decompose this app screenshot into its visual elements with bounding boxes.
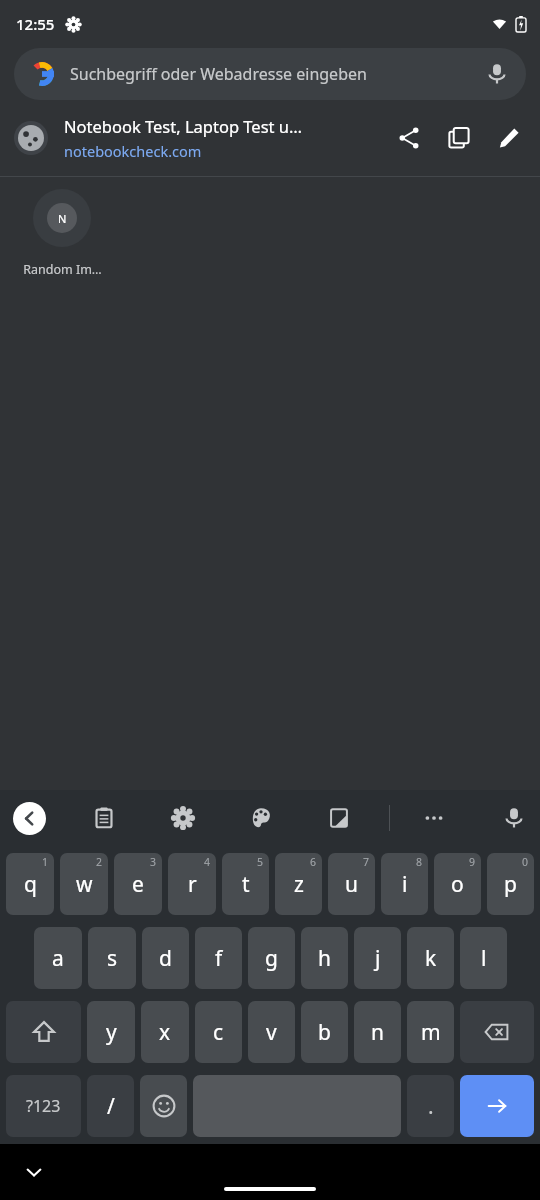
staticText: d (159, 944, 172, 973)
button[interactable]: s (88, 927, 136, 989)
staticText: 9 (469, 855, 476, 869)
button[interactable]: Copy (442, 121, 476, 155)
staticText: f (215, 944, 223, 973)
staticText: 12:55 (16, 14, 55, 34)
button[interactable]: Hide keyboard (20, 1158, 48, 1186)
button[interactable]: More options (413, 797, 455, 839)
staticText: 3 (150, 855, 157, 869)
button[interactable]: m (407, 1001, 454, 1063)
staticText: notebookcheck.com (64, 141, 202, 161)
button[interactable]: b (301, 1001, 348, 1063)
button[interactable]: e (114, 853, 162, 915)
staticText: o (451, 870, 464, 899)
button[interactable]: g (248, 927, 295, 989)
staticText: y (106, 1018, 117, 1047)
staticText: 6 (310, 855, 317, 869)
staticText: i (402, 870, 408, 899)
button[interactable]: a (34, 927, 82, 989)
button[interactable]: x (141, 1001, 189, 1063)
staticText: 5 (257, 855, 264, 869)
button[interactable]: f (195, 927, 242, 989)
button[interactable]: r (168, 853, 216, 915)
staticText: z (294, 870, 304, 899)
button[interactable]: q (6, 853, 54, 915)
button[interactable]: / (87, 1075, 134, 1137)
staticText: s (107, 944, 118, 973)
staticText: h (318, 944, 331, 973)
button[interactable]: Theme (240, 797, 282, 839)
button[interactable]: v (248, 1001, 295, 1063)
button[interactable]: Resize (318, 797, 360, 839)
button[interactable]: u (328, 853, 375, 915)
button[interactable]: . (407, 1075, 454, 1137)
staticText: g (265, 944, 278, 973)
staticText: l (481, 944, 487, 973)
button[interactable]: z (275, 853, 322, 915)
button[interactable]: Edit (492, 121, 526, 155)
staticText: / (107, 1092, 115, 1121)
staticText: 4 (204, 855, 211, 869)
staticText: r (188, 870, 197, 899)
staticText: 1 (42, 855, 49, 869)
button[interactable]: j (354, 927, 401, 989)
button[interactable]: l (460, 927, 507, 989)
staticText: w (76, 870, 93, 899)
staticText: Random Im… (23, 261, 102, 278)
staticText: a (52, 944, 64, 973)
button[interactable]: Settings (162, 797, 204, 839)
button[interactable]: Voice input (493, 797, 535, 839)
button[interactable]: Shift (6, 1001, 81, 1063)
button[interactable]: Clipboard (83, 797, 125, 839)
button[interactable]: Notebook Test, Laptop Test u… (0, 100, 540, 176)
staticText: v (266, 1018, 277, 1047)
button[interactable]: Share (392, 121, 426, 155)
staticText: t (242, 870, 250, 899)
button[interactable]: ?123 (6, 1075, 81, 1137)
button[interactable]: t (222, 853, 269, 915)
staticText: 7 (363, 855, 370, 869)
staticText: u (345, 870, 358, 899)
staticText: e (132, 870, 144, 899)
button[interactable]: Back (13, 802, 46, 835)
button[interactable]: Emoji (140, 1075, 187, 1137)
staticText: q (24, 870, 37, 899)
staticText: . (428, 1092, 434, 1121)
staticText: Suchbegriff oder Webadresse eingeben (70, 63, 367, 85)
button[interactable]: d (142, 927, 189, 989)
button[interactable]: n (354, 1001, 401, 1063)
staticText: c (213, 1018, 224, 1047)
button[interactable]: N (16, 189, 108, 278)
button[interactable]: h (301, 927, 348, 989)
staticText: k (425, 944, 437, 973)
staticText: ?123 (26, 1095, 61, 1117)
button[interactable]: y (87, 1001, 135, 1063)
button[interactable]: Go (460, 1075, 534, 1137)
staticText: 2 (96, 855, 103, 869)
button[interactable]: Backspace (460, 1001, 534, 1063)
button[interactable]: w (60, 853, 108, 915)
button[interactable]: Voice search (482, 59, 512, 89)
staticText: b (318, 1018, 331, 1047)
button[interactable]: o (434, 853, 481, 915)
button[interactable]: c (195, 1001, 242, 1063)
button[interactable]: k (407, 927, 454, 989)
staticText: m (421, 1018, 441, 1047)
staticText: N (58, 211, 67, 226)
button[interactable]: i (381, 853, 428, 915)
staticText: n (371, 1018, 384, 1047)
staticText: Notebook Test, Laptop Test u… (64, 115, 303, 137)
staticText: 0 (522, 855, 529, 869)
staticText: p (504, 870, 517, 899)
staticText: 8 (416, 855, 423, 869)
staticText: j (375, 944, 381, 973)
staticText: x (159, 1018, 171, 1047)
button[interactable]: p (487, 853, 534, 915)
button[interactable]: Suchbegriff oder Webadresse eingeben (14, 48, 526, 100)
